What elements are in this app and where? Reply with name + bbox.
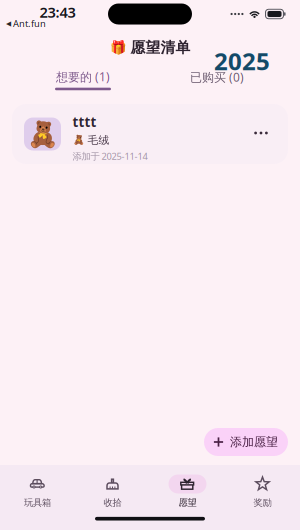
button[interactable]: More options bbox=[246, 120, 276, 146]
staticText: 愿望 bbox=[178, 497, 196, 508]
staticText: 🧸 bbox=[72, 135, 84, 146]
staticText: 添加愿望 bbox=[230, 435, 278, 449]
staticText: Ant.fun bbox=[13, 17, 46, 30]
staticText: ◀ bbox=[6, 20, 11, 27]
button[interactable]: 愿望 bbox=[150, 474, 225, 508]
staticText: 已购买 (0) bbox=[190, 69, 244, 85]
button[interactable]: 添加愿望 bbox=[204, 428, 288, 456]
staticText: 2025 bbox=[213, 45, 269, 77]
staticText: 2025 bbox=[215, 45, 271, 77]
button[interactable]: 🧸 bbox=[12, 104, 288, 164]
button[interactable]: 奖励 bbox=[225, 474, 300, 508]
staticText: tttt bbox=[72, 113, 96, 131]
staticText: 玩具箱 bbox=[24, 497, 51, 508]
staticText: 🧸 bbox=[26, 119, 58, 148]
staticText: 想要的 (1) bbox=[56, 69, 110, 85]
staticText: 添加于 2025-11-14 bbox=[72, 150, 147, 162]
staticText: 2025 bbox=[214, 45, 270, 77]
button[interactable]: 收拾 bbox=[75, 474, 150, 508]
button[interactable]: 想要的 (1) bbox=[28, 69, 138, 90]
staticText: 🎁 bbox=[109, 40, 126, 55]
staticText: 奖励 bbox=[253, 497, 271, 508]
staticText: 收拾 bbox=[103, 497, 121, 508]
staticText: 23:43 bbox=[39, 2, 75, 22]
button[interactable]: 玩具箱 bbox=[0, 474, 75, 508]
staticText: 毛绒 bbox=[87, 134, 109, 147]
button[interactable]: 已购买 (0) bbox=[162, 67, 272, 87]
staticText: 愿望清单 bbox=[130, 38, 190, 56]
